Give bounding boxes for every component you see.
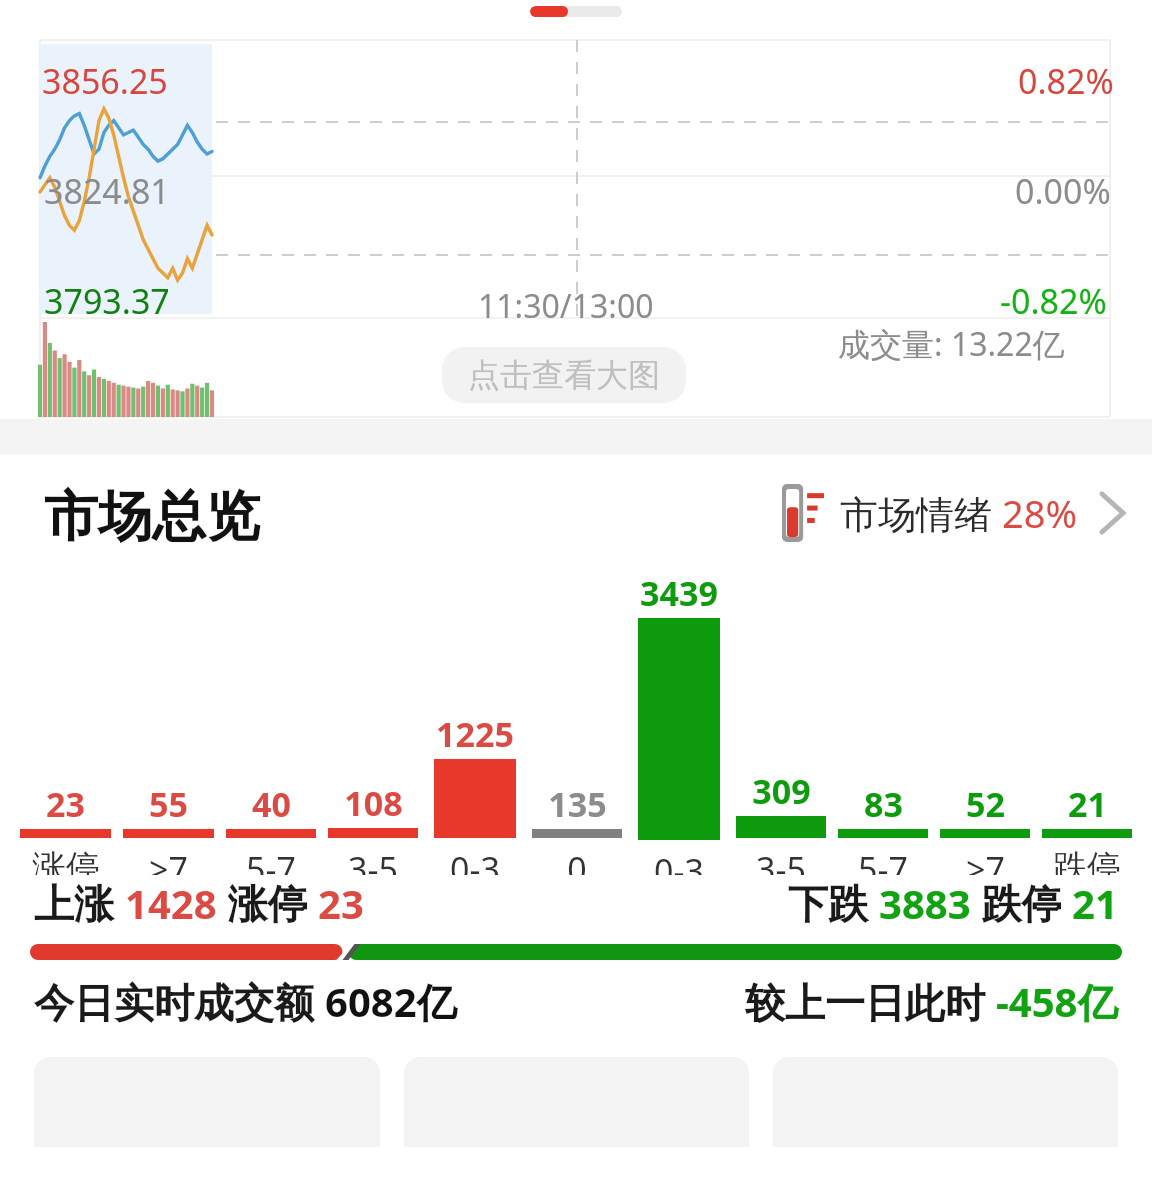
staticText: 3-5 bbox=[756, 846, 806, 875]
staticText: 3824.81 bbox=[44, 168, 170, 214]
button[interactable]: 23 bbox=[14, 570, 117, 875]
staticText: 23 bbox=[46, 781, 85, 827]
staticText: 0 bbox=[567, 846, 587, 875]
staticText: 0-3 bbox=[450, 846, 500, 875]
button[interactable]: 市场情绪 bbox=[774, 474, 1132, 552]
staticText: 11:30/13:00 bbox=[478, 284, 654, 328]
staticText: 3856.25 bbox=[42, 58, 168, 104]
staticText: 较上一日此时 bbox=[745, 974, 996, 1029]
staticText: 上涨 bbox=[34, 875, 125, 930]
staticText: 跌停 bbox=[1053, 846, 1121, 875]
staticText: 6082亿 bbox=[325, 974, 457, 1029]
button[interactable]: 135 bbox=[526, 570, 628, 875]
staticText: 135 bbox=[548, 781, 607, 827]
button[interactable]: 55 bbox=[117, 570, 220, 875]
staticText: >7 bbox=[149, 846, 188, 875]
staticText: 83 bbox=[864, 781, 903, 827]
staticText: 309 bbox=[752, 768, 811, 814]
staticText: 3793.37 bbox=[44, 278, 170, 324]
staticText: 涨停 bbox=[217, 875, 318, 930]
staticText: 5-7 bbox=[858, 846, 908, 875]
staticText: 108 bbox=[344, 780, 403, 826]
button[interactable]: 83 bbox=[832, 570, 934, 875]
staticText: 1225 bbox=[436, 711, 514, 757]
staticText: 21 bbox=[1072, 876, 1118, 930]
other: More bbox=[1100, 490, 1126, 536]
staticText: 40 bbox=[252, 781, 291, 827]
staticText: 成交量: 13.22亿 bbox=[838, 322, 1065, 366]
staticText: -458亿 bbox=[996, 974, 1118, 1029]
button[interactable]: 1225 bbox=[424, 570, 526, 875]
staticText: 市场情绪 bbox=[840, 487, 1002, 539]
staticText: 3-5 bbox=[348, 846, 398, 875]
staticText: 1428 bbox=[125, 876, 217, 930]
staticText: 涨停 bbox=[32, 846, 100, 875]
staticText: 下跌 bbox=[788, 875, 879, 930]
staticText: 3883 bbox=[879, 876, 971, 930]
staticText: 0.00% bbox=[1015, 168, 1111, 214]
staticText: -0.82% bbox=[1000, 278, 1107, 324]
button[interactable]: 108 bbox=[322, 570, 424, 875]
staticText: 21 bbox=[1068, 781, 1107, 827]
staticText: 今日实时成交额 bbox=[34, 974, 325, 1029]
staticText: 28% bbox=[1002, 487, 1078, 539]
button[interactable]: 309 bbox=[730, 570, 832, 875]
staticText: 0.82% bbox=[1018, 58, 1114, 104]
button[interactable]: 3439 bbox=[628, 570, 730, 875]
button[interactable]: 40 bbox=[220, 570, 322, 875]
staticText: >7 bbox=[966, 846, 1005, 875]
staticText: 52 bbox=[966, 781, 1005, 827]
button[interactable]: 21 bbox=[1036, 570, 1138, 875]
staticText: 5-7 bbox=[246, 846, 296, 875]
staticText: 0-3 bbox=[654, 848, 704, 875]
staticText: 23 bbox=[318, 876, 364, 930]
staticText: 3439 bbox=[640, 570, 718, 616]
button[interactable]: 52 bbox=[934, 570, 1036, 875]
staticText: 跌停 bbox=[971, 875, 1072, 930]
button[interactable]: 点击查看大图 bbox=[442, 347, 686, 403]
staticText: 55 bbox=[149, 781, 188, 827]
staticText: 点击查看大图 bbox=[468, 355, 660, 395]
staticText: 市场总览 bbox=[44, 483, 260, 551]
